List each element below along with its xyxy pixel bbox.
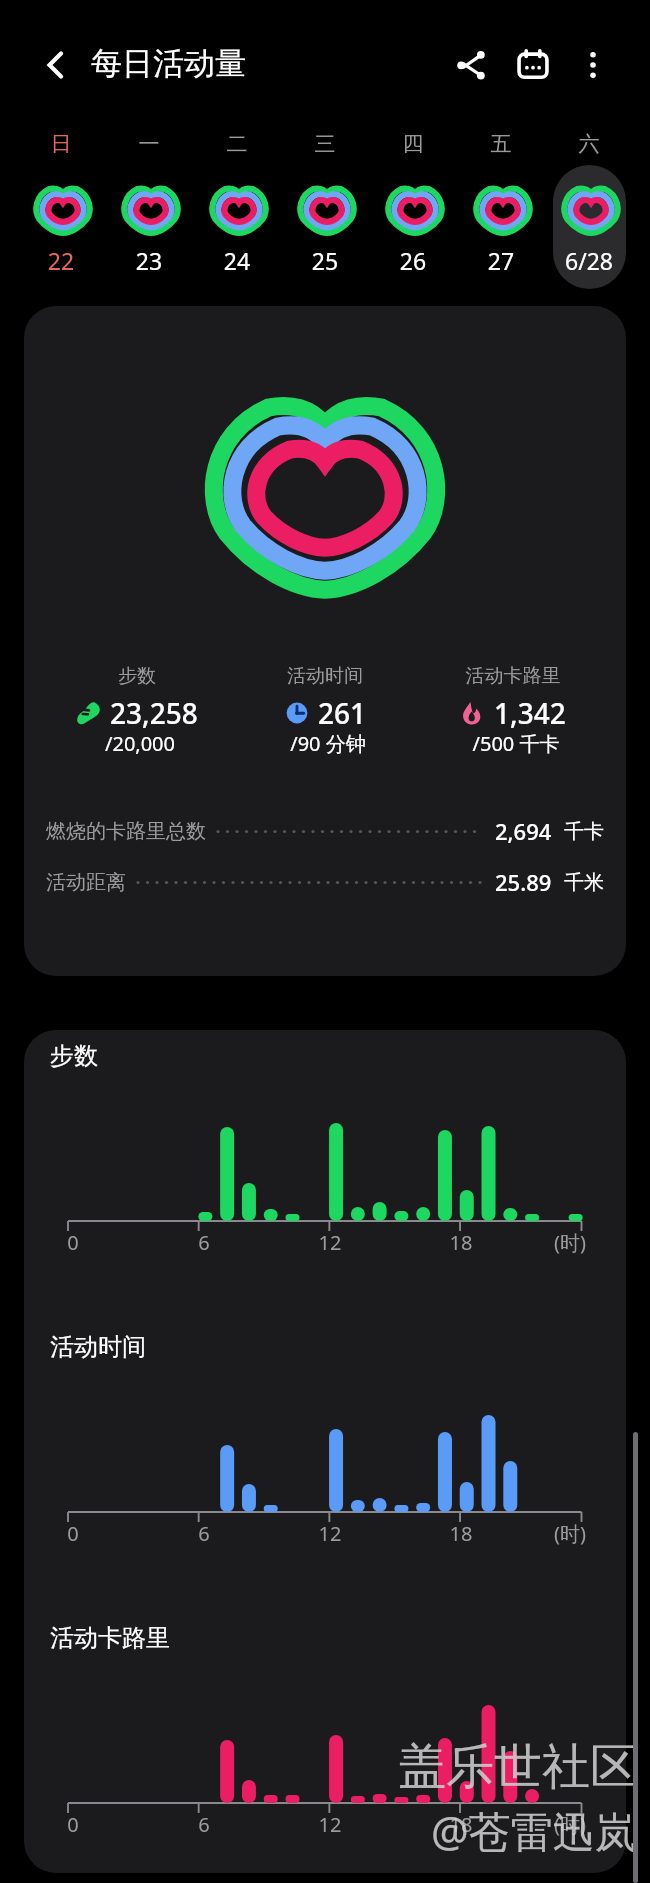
staticText: /500 千卡 bbox=[426, 730, 606, 757]
staticText: 2,694 bbox=[495, 816, 552, 846]
staticText: 27 bbox=[461, 245, 541, 276]
staticText: @苍雷迅岚 bbox=[431, 1802, 637, 1859]
button[interactable]: Calendar bbox=[506, 38, 560, 92]
staticText: 活动卡路里 bbox=[423, 664, 603, 688]
staticText: 18 bbox=[436, 1520, 486, 1547]
staticText: 燃烧的卡路里总数 bbox=[46, 819, 206, 844]
button[interactable]: More options bbox=[566, 38, 620, 92]
staticText: 步数 bbox=[47, 664, 227, 688]
staticText: 二 bbox=[207, 131, 267, 157]
button[interactable] bbox=[201, 165, 274, 289]
staticText: 25 bbox=[285, 245, 365, 276]
staticText: 活动卡路里 bbox=[50, 1623, 170, 1653]
staticText: 活动时间 bbox=[235, 664, 415, 688]
staticText: 24 bbox=[197, 245, 277, 276]
button[interactable]: Back bbox=[29, 38, 83, 92]
button[interactable]: 步数 bbox=[24, 306, 626, 976]
staticText: 每日活动量 bbox=[91, 44, 246, 83]
button[interactable] bbox=[553, 165, 626, 289]
staticText: 6 bbox=[179, 1520, 229, 1547]
staticText: (时) bbox=[535, 1811, 605, 1838]
staticText: 三 bbox=[295, 131, 355, 157]
staticText: 25.89 bbox=[495, 867, 552, 897]
staticText: 一 bbox=[119, 131, 179, 157]
staticText: 活动时间 bbox=[50, 1332, 146, 1362]
staticText: 18 bbox=[436, 1811, 486, 1838]
staticText: 千米 bbox=[564, 870, 604, 895]
staticText: 23 bbox=[109, 245, 189, 276]
staticText: 12 bbox=[305, 1520, 355, 1547]
staticText: 四 bbox=[383, 131, 443, 157]
button[interactable] bbox=[113, 165, 186, 289]
staticText: 六 bbox=[559, 131, 619, 157]
staticText: 五 bbox=[471, 131, 531, 157]
staticText: (时) bbox=[535, 1520, 605, 1547]
staticText: 12 bbox=[305, 1229, 355, 1256]
staticText: (时) bbox=[535, 1229, 605, 1256]
button[interactable] bbox=[465, 165, 538, 289]
staticText: 盖乐世社区 bbox=[398, 1737, 638, 1797]
staticText: 22 bbox=[21, 245, 101, 276]
staticText: 12 bbox=[305, 1811, 355, 1838]
staticText: 0 bbox=[48, 1520, 98, 1547]
staticText: 步数 bbox=[50, 1041, 98, 1071]
staticText: 活动距离 bbox=[46, 870, 126, 895]
button[interactable] bbox=[25, 165, 98, 289]
staticText: 日 bbox=[31, 131, 91, 157]
staticText: 千卡 bbox=[564, 819, 604, 844]
staticText: 6/28 bbox=[549, 245, 629, 276]
staticText: 26 bbox=[373, 245, 453, 276]
staticText: /20,000 bbox=[50, 730, 230, 757]
staticText: 6 bbox=[179, 1229, 229, 1256]
staticText: 0 bbox=[48, 1229, 98, 1256]
button[interactable]: Share bbox=[444, 38, 498, 92]
staticText: 261 bbox=[318, 694, 367, 732]
staticText: /90 分钟 bbox=[238, 730, 418, 757]
staticText: 1,342 bbox=[494, 694, 566, 732]
staticText: 0 bbox=[48, 1811, 98, 1838]
staticText: 6 bbox=[179, 1811, 229, 1838]
staticText: 23,258 bbox=[110, 694, 198, 732]
button[interactable] bbox=[289, 165, 362, 289]
staticText: 18 bbox=[436, 1229, 486, 1256]
button[interactable] bbox=[377, 165, 450, 289]
